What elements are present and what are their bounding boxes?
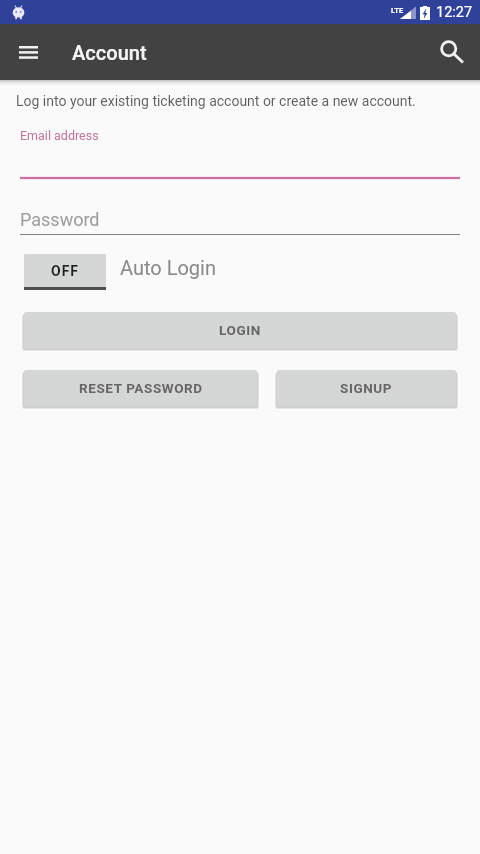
button[interactable]: LOGIN <box>24 312 456 348</box>
staticText: 12:27 <box>436 4 473 21</box>
staticText: LTE <box>391 6 404 15</box>
staticText: Password <box>20 209 100 230</box>
staticText: OFF <box>51 263 80 279</box>
staticText: Account <box>72 41 147 64</box>
staticText: Log into your existing ticketing account… <box>16 93 416 109</box>
staticText: SIGNUP <box>340 380 393 396</box>
staticText: LOGIN <box>219 322 261 338</box>
staticText: RESET PASSWORD <box>79 380 203 396</box>
staticText: Email address <box>20 128 99 143</box>
button[interactable]: Search <box>428 28 476 76</box>
button[interactable]: SIGNUP <box>277 370 456 406</box>
button[interactable]: Open navigation drawer <box>4 28 52 76</box>
button[interactable]: OFF <box>24 254 106 290</box>
button[interactable]: RESET PASSWORD <box>24 370 257 406</box>
staticText: Auto Login <box>120 256 216 279</box>
